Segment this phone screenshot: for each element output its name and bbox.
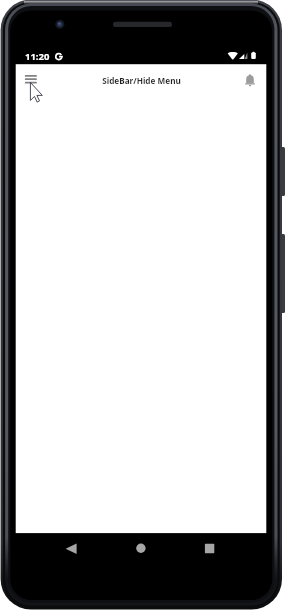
staticText: 11:20: [25, 50, 50, 63]
button[interactable]: Open navigation menu: [19, 68, 43, 92]
button[interactable]: Back: [59, 536, 83, 560]
button[interactable]: Notifications: [238, 68, 262, 92]
staticText: SideBar/Hide Menu: [102, 75, 181, 86]
button[interactable]: Home: [129, 536, 153, 560]
button[interactable]: Recent apps: [197, 536, 221, 560]
